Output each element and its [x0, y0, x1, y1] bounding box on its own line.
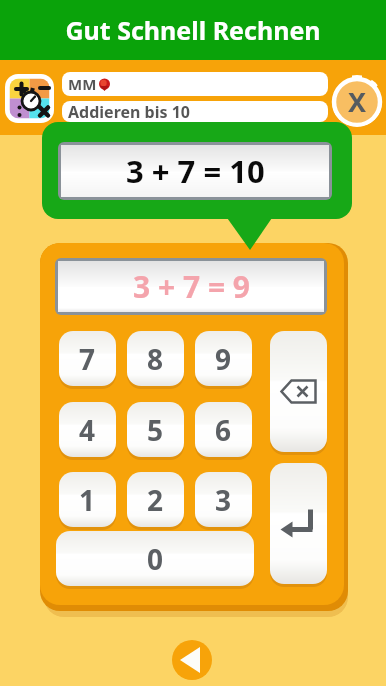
- button[interactable]: 6: [195, 402, 252, 457]
- button[interactable]: [270, 331, 327, 452]
- button[interactable]: 8: [127, 331, 184, 386]
- button[interactable]: MM: [62, 72, 328, 96]
- staticText: 6: [215, 411, 232, 449]
- staticText: MM: [68, 74, 97, 94]
- button[interactable]: 1: [59, 472, 116, 527]
- button[interactable]: 5: [127, 402, 184, 457]
- staticText: 0: [147, 540, 164, 578]
- button[interactable]: [5, 74, 54, 123]
- staticText: 5: [147, 411, 164, 449]
- staticText: 3 + 7 = 10: [126, 150, 265, 192]
- staticText: 3: [215, 481, 232, 519]
- button[interactable]: [270, 463, 327, 584]
- staticText: 9: [215, 340, 232, 378]
- staticText: 4: [79, 411, 96, 449]
- button[interactable]: 7: [59, 331, 116, 386]
- staticText: Addieren bis 10: [68, 101, 190, 122]
- button[interactable]: 9: [195, 331, 252, 386]
- button[interactable]: [172, 640, 212, 680]
- button[interactable]: 3: [195, 472, 252, 527]
- button[interactable]: Addieren bis 10: [62, 101, 328, 122]
- staticText: X: [348, 83, 367, 120]
- button[interactable]: 4: [59, 402, 116, 457]
- staticText: 7: [79, 340, 96, 378]
- staticText: 3 + 7 = 9: [133, 266, 250, 307]
- button[interactable]: X: [331, 75, 383, 127]
- button[interactable]: 2: [127, 472, 184, 527]
- staticText: 1: [79, 481, 96, 519]
- staticText: 8: [147, 340, 164, 378]
- staticText: 2: [147, 481, 164, 519]
- button[interactable]: 0: [56, 531, 254, 586]
- staticText: Gut Schnell Rechnen: [65, 13, 321, 47]
